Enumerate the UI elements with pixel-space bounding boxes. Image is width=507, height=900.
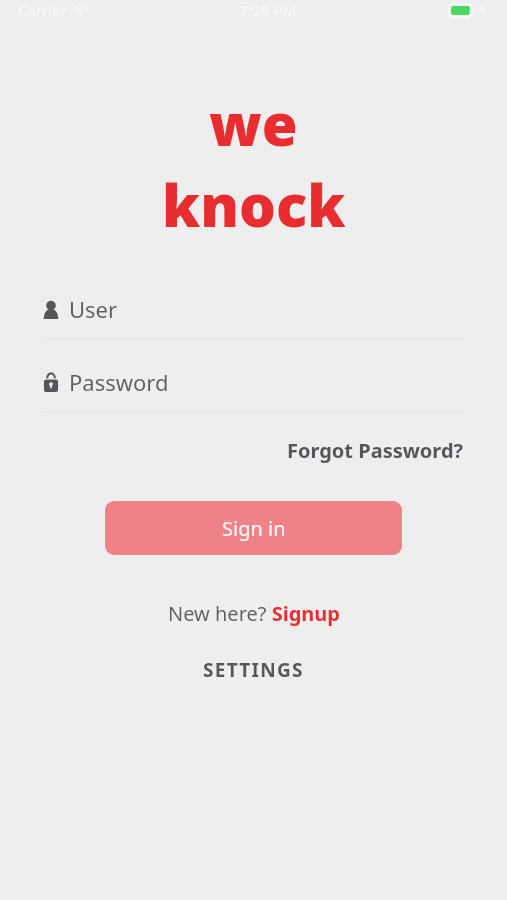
staticText: 7:29 PM: [240, 0, 297, 20]
button[interactable]: Sign in: [105, 501, 402, 555]
staticText: we: [209, 84, 298, 163]
staticText: Sign in: [222, 515, 286, 542]
button[interactable]: User: [0, 294, 507, 339]
staticText: Password: [69, 367, 169, 397]
staticText: Forgot Password?: [287, 437, 464, 464]
staticText: knock: [162, 165, 346, 244]
button[interactable]: Charging: [477, 4, 489, 16]
button[interactable]: Password: [0, 367, 507, 412]
button[interactable]: SETTINGS: [195, 652, 312, 688]
button[interactable]: Forgot Password?: [284, 432, 467, 469]
button[interactable]: New here? Signup: [162, 595, 346, 632]
staticText: New here? Signup: [168, 600, 340, 627]
staticText: User: [69, 294, 118, 324]
staticText: Carrier: [18, 0, 67, 20]
staticText: SETTINGS: [203, 657, 304, 683]
